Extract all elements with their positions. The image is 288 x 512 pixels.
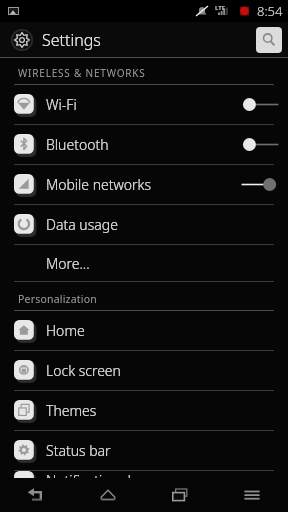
button[interactable]: More... bbox=[0, 245, 288, 281]
button[interactable]: Recent apps bbox=[144, 478, 216, 512]
staticText: Lock screen bbox=[46, 361, 121, 380]
button[interactable]: Search bbox=[256, 27, 282, 53]
staticText: Notification drawer bbox=[46, 471, 168, 478]
button[interactable]: Bluetooth bbox=[0, 125, 288, 164]
staticText: Home bbox=[46, 321, 85, 340]
staticText: More... bbox=[46, 254, 90, 273]
staticText: Wi-Fi bbox=[46, 95, 77, 114]
button[interactable]: Mobile networks bbox=[0, 165, 288, 204]
staticText: WIRELESS & NETWORKS bbox=[18, 66, 146, 80]
staticText: Themes bbox=[46, 401, 97, 420]
button[interactable]: Themes bbox=[0, 391, 288, 430]
staticText: Settings bbox=[42, 29, 101, 51]
staticText: Bluetooth bbox=[46, 135, 109, 154]
button[interactable]: Lock screen bbox=[0, 351, 288, 390]
button[interactable]: Home bbox=[72, 478, 144, 512]
staticText: LTE bbox=[215, 4, 226, 12]
button[interactable]: Back bbox=[0, 478, 72, 512]
staticText: Personalization bbox=[18, 292, 97, 306]
button[interactable]: Status bar bbox=[0, 431, 288, 470]
button[interactable]: Notification drawer bbox=[0, 471, 288, 478]
staticText: Mobile networks bbox=[46, 175, 152, 194]
button[interactable]: Home bbox=[0, 311, 288, 350]
button[interactable]: Toggle Bluetooth bbox=[238, 125, 282, 164]
staticText: 8:54 bbox=[257, 2, 283, 20]
staticText: Data usage bbox=[46, 215, 118, 234]
button[interactable]: Toggle Mobile networks bbox=[238, 165, 282, 204]
button[interactable]: Menu bbox=[216, 478, 288, 512]
button[interactable]: Data usage bbox=[0, 205, 288, 244]
staticText: Status bar bbox=[46, 441, 111, 460]
button[interactable]: Toggle Wi-Fi bbox=[238, 85, 282, 124]
button[interactable]: Wi-Fi bbox=[0, 85, 288, 124]
